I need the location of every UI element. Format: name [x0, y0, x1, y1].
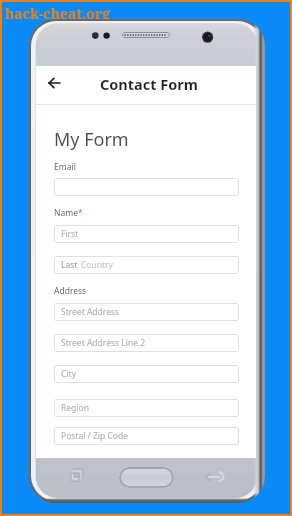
staticText: Name [54, 207, 78, 219]
staticText: First [61, 228, 79, 240]
staticText: City [61, 368, 76, 380]
staticText: hack-cheat.org [5, 4, 111, 23]
button[interactable]: Last [54, 256, 239, 274]
staticText: * [78, 207, 83, 219]
staticText: Region [61, 402, 89, 414]
button[interactable]: Postal / Zip Code [54, 427, 239, 445]
button[interactable]: Street Address Line 2 [54, 334, 239, 352]
button[interactable]: First [54, 225, 239, 243]
button[interactable]: Region [54, 399, 239, 417]
button[interactable]: Back [41, 70, 67, 96]
staticText: My Form [54, 127, 129, 152]
staticText: Country [81, 259, 113, 271]
staticText: Contact Form [100, 74, 198, 94]
button[interactable] [54, 178, 239, 196]
staticText: Street Address [61, 306, 120, 318]
staticText: Address [54, 285, 87, 297]
staticText: Last [61, 259, 78, 271]
staticText: Street Address Line 2 [61, 337, 146, 349]
staticText: Email [54, 161, 76, 173]
staticText: Postal / Zip Code [61, 430, 128, 442]
button[interactable]: Street Address [54, 303, 239, 321]
button[interactable]: City [54, 365, 239, 383]
